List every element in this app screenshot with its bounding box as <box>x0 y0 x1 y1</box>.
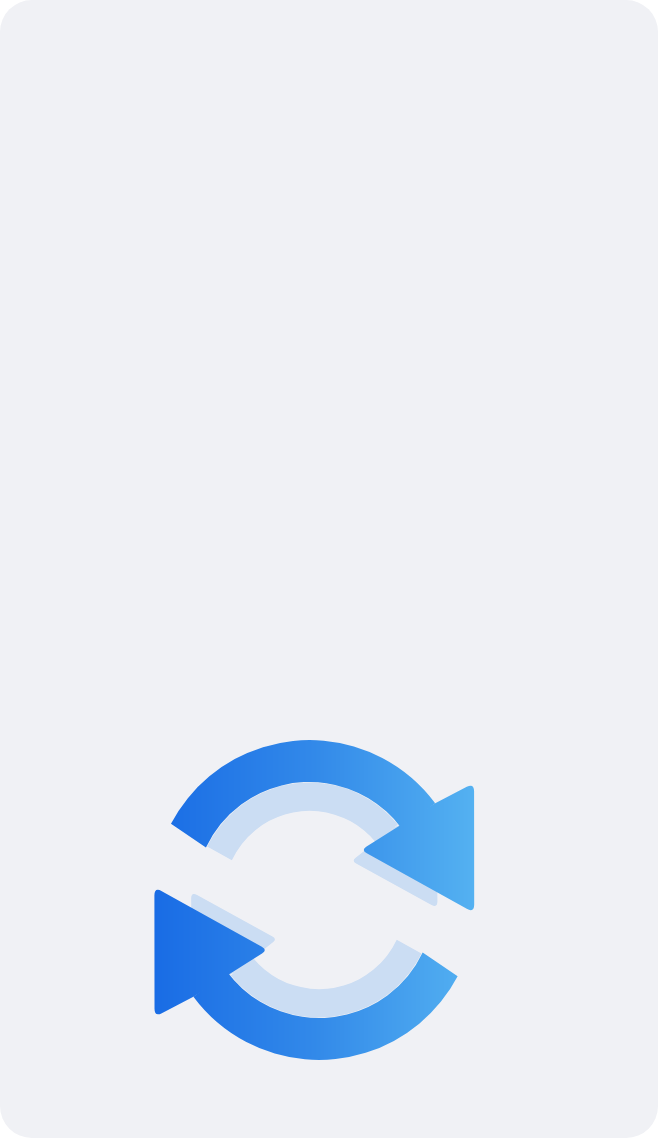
other: Syncing <box>0 0 658 1138</box>
